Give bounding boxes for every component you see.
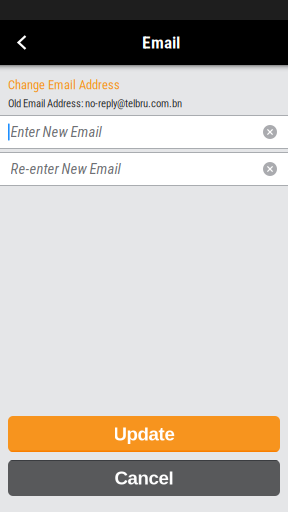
staticText: Update	[113, 424, 174, 444]
staticText: Old Email Address: no-reply@telbru.com.b…	[8, 97, 182, 110]
button[interactable]: Clear text	[256, 153, 288, 185]
button[interactable]: Cancel	[8, 460, 280, 496]
staticText: Cancel	[114, 468, 173, 488]
button[interactable]: Update	[8, 416, 280, 452]
staticText: Email	[142, 32, 180, 53]
button[interactable]: Back	[0, 20, 44, 65]
staticText: Enter New Email	[11, 123, 102, 141]
button[interactable]: Clear text	[256, 116, 288, 148]
staticText: Re-enter New Email	[11, 160, 121, 178]
staticText: Change Email Address	[8, 78, 120, 92]
